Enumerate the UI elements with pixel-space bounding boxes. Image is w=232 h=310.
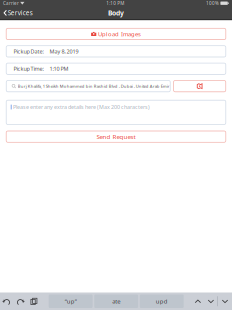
staticText: Burj Khalifa, 1 Sheikh Mohammed bin Rash… (18, 83, 170, 89)
staticText: Pickup Date: (13, 48, 43, 55)
button[interactable]: Burj Khalifa, 1 Sheikh Mohammed bin Rash… (6, 80, 170, 92)
staticText: Services (8, 9, 33, 17)
button[interactable]: Send Request (6, 131, 226, 142)
button[interactable]: Pickup Time: (6, 63, 226, 74)
staticText: Please enter any extra details here (Max… (13, 103, 150, 111)
staticText: upd (156, 297, 168, 305)
button[interactable]: Previous field (191, 292, 204, 310)
staticText: 1:10 PM (49, 65, 68, 72)
button[interactable]: Paste (27, 292, 41, 310)
staticText: 100% (206, 0, 219, 6)
staticText: May 8, 2019 (49, 48, 78, 55)
button[interactable]: Hide keyboard (218, 292, 232, 310)
staticText: Pickup Time: (13, 65, 43, 72)
button[interactable]: Please enter any extra details here (Max… (6, 100, 226, 124)
staticText: Body (108, 8, 124, 17)
button[interactable]: Upload Images (6, 28, 226, 40)
button[interactable]: Redo (13, 292, 27, 310)
button[interactable]: Pickup Date: (6, 46, 226, 57)
staticText: Carrier (3, 0, 19, 6)
button[interactable]: Services (0, 6, 37, 19)
button[interactable]: ate (94, 294, 138, 308)
staticText: 1:10 PM (106, 0, 124, 6)
staticText: Send Request (96, 132, 135, 141)
button[interactable]: “up” (49, 294, 93, 308)
button[interactable]: Next field (204, 292, 217, 310)
staticText: Upload Images (98, 30, 141, 38)
button[interactable]: Undo (0, 292, 13, 310)
button[interactable]: Pick location on map (174, 80, 226, 92)
staticText: ate (112, 297, 120, 305)
button[interactable]: upd (140, 294, 184, 308)
staticText: “up” (65, 297, 77, 305)
